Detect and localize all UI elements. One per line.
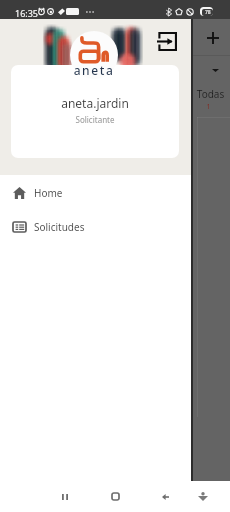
staticText: Todas [194, 87, 227, 101]
staticText: 1 [192, 102, 225, 112]
button[interactable]: Solicitudes [0, 210, 191, 244]
button[interactable]: Back [151, 481, 179, 512]
staticText: 78 [205, 9, 211, 16]
button[interactable]: Home [101, 481, 129, 512]
staticText: aneta.jardin [11, 95, 179, 111]
staticText: aneta [64, 62, 124, 78]
staticText: 16:35 [15, 7, 39, 19]
button[interactable]: Hide keyboard [189, 481, 217, 512]
button[interactable]: aneta.jardin [11, 65, 179, 158]
button[interactable]: Add [194, 25, 230, 50]
button[interactable]: Recents [51, 481, 79, 512]
staticText: Home [34, 186, 63, 200]
button[interactable]: Home [0, 176, 191, 210]
button[interactable]: Cerrar sesion [152, 26, 182, 56]
staticText: Solicitante [11, 114, 179, 125]
staticText: Solicitudes [34, 220, 85, 234]
